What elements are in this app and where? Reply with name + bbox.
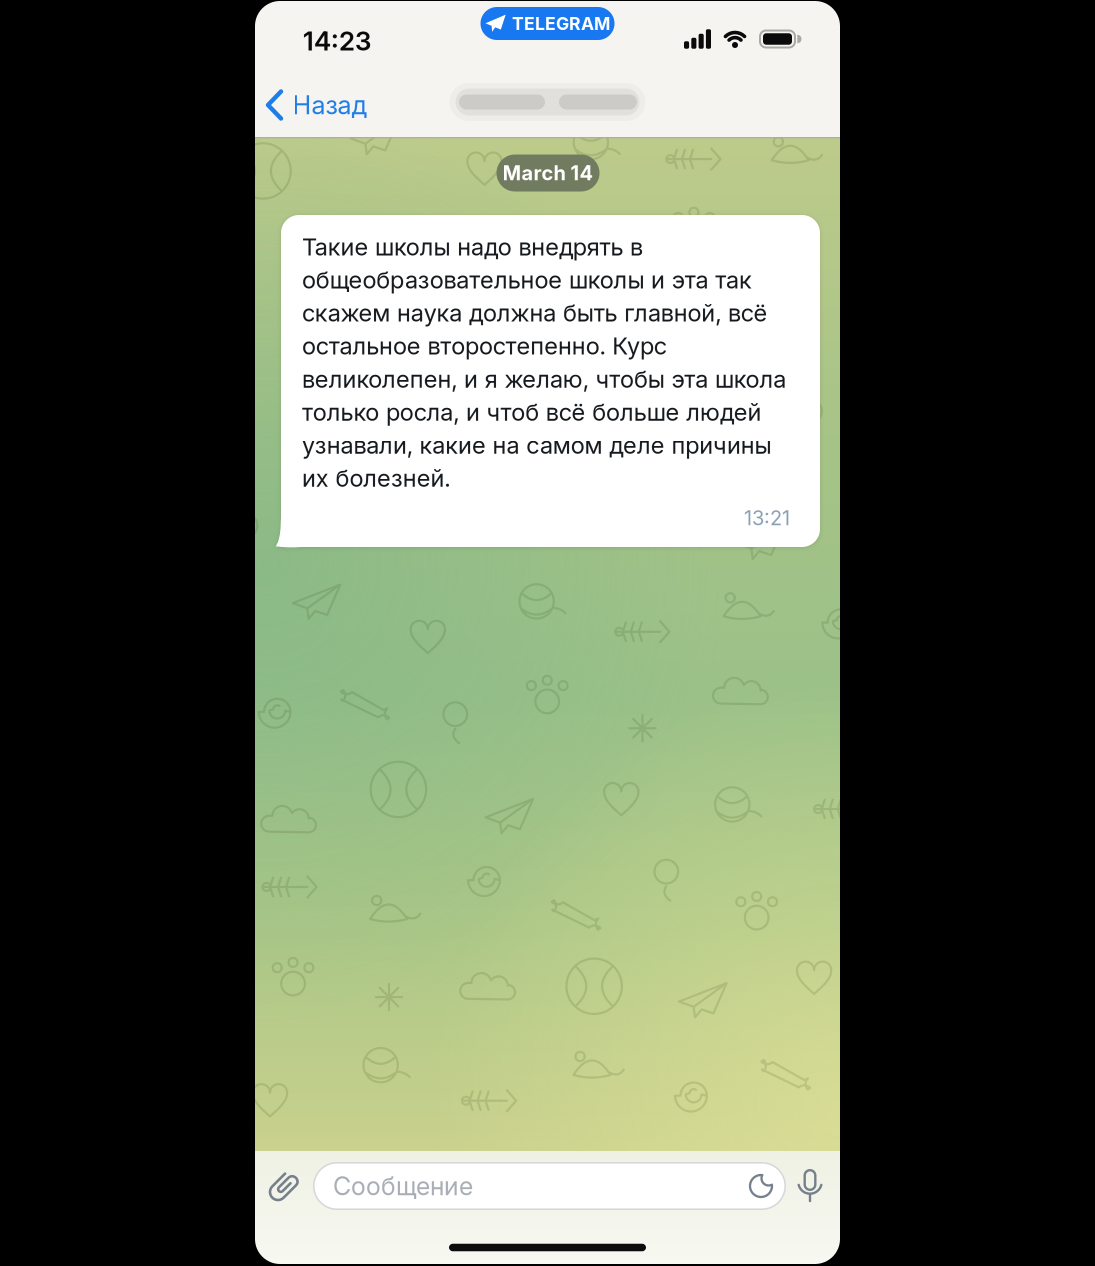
- button[interactable]: Message: [313, 1162, 786, 1210]
- staticText: March 14: [502, 161, 593, 185]
- button[interactable]: Record voice message: [796, 1168, 824, 1206]
- button[interactable]: March 14: [496, 154, 599, 191]
- staticText: Сообщение: [333, 1171, 473, 1201]
- staticText: 13:21: [744, 506, 790, 530]
- staticText: Назад: [292, 90, 366, 120]
- button[interactable]: Attach file: [274, 1167, 294, 1204]
- staticText: TELEGRAM: [512, 13, 610, 34]
- button[interactable]: Back: [265, 89, 366, 120]
- staticText: 14:23: [303, 25, 371, 57]
- button[interactable]: Telegram: [480, 7, 614, 40]
- button[interactable]: Home: [449, 1244, 646, 1251]
- staticText: Такие школы надо внедрять в общеобразова…: [302, 230, 786, 495]
